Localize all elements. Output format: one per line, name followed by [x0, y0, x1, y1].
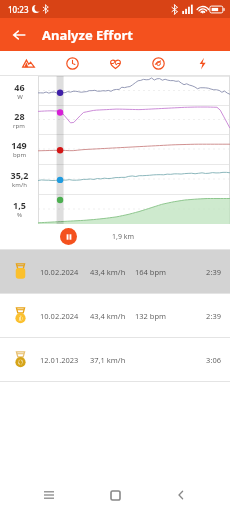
staticText: 35,2 [10, 169, 29, 181]
staticText: 132 bpm [135, 311, 179, 321]
button[interactable]: Recents [25, 478, 73, 512]
staticText: 2:39 [179, 267, 221, 277]
staticText: 10.02.2024 [40, 311, 90, 321]
button[interactable]: 12.01.2023 [0, 338, 230, 381]
button[interactable]: Back [157, 478, 205, 512]
staticText: 10.02.2024 [40, 267, 90, 277]
button[interactable]: Pause marker [60, 228, 77, 245]
staticText: 149 [11, 139, 27, 151]
button[interactable]: Heart rate [100, 51, 130, 76]
staticText: bpm [13, 151, 26, 159]
staticText: 37,1 km/h [90, 355, 135, 365]
button[interactable]: Cadence [143, 51, 173, 76]
staticText: 46 [14, 81, 25, 93]
staticText: 1,9 km [112, 232, 134, 242]
button[interactable]: Home [91, 478, 139, 512]
staticText: 28 [14, 110, 25, 122]
staticText: rpm [13, 122, 25, 130]
button[interactable]: Power [187, 51, 217, 76]
staticText: 1,5 [13, 199, 26, 211]
staticText: 12.01.2023 [40, 355, 90, 365]
staticText: km/h [12, 181, 27, 189]
staticText: 43,4 km/h [90, 311, 135, 321]
staticText: 164 bpm [135, 267, 179, 277]
staticText: % [17, 211, 22, 219]
staticText: W [17, 93, 23, 101]
staticText: Analyze Effort [42, 26, 133, 44]
button[interactable]: Elevation [13, 51, 43, 76]
staticText: 3:06 [179, 355, 221, 365]
staticText: 2:39 [179, 311, 221, 321]
button[interactable]: 10.02.2024 [0, 250, 230, 293]
staticText: 43,4 km/h [90, 267, 135, 277]
button[interactable]: Back [6, 22, 32, 48]
button[interactable]: 10.02.2024 [0, 294, 230, 337]
button[interactable]: Time [57, 51, 87, 76]
staticText: 10:23 [8, 4, 29, 15]
